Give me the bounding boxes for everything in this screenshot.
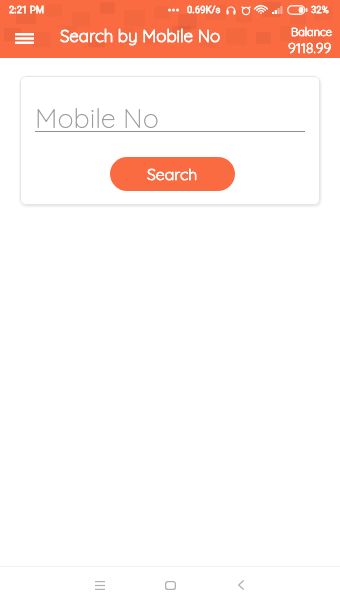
staticText: Search (147, 164, 198, 184)
staticText: Search (147, 164, 198, 184)
button[interactable]: Back (221, 566, 261, 604)
staticText: 9118.99 (288, 39, 332, 57)
button[interactable]: Home (150, 566, 190, 604)
staticText: Search by Mobile No (60, 25, 221, 46)
button[interactable]: Recent apps (80, 566, 120, 604)
staticText: 2:21 PM (9, 4, 44, 15)
button[interactable]: Search (110, 157, 235, 191)
staticText: Balance (291, 25, 332, 39)
button[interactable]: Open navigation menu (8, 22, 40, 54)
staticText: 32% (311, 4, 329, 15)
staticText: 0.69K/s (187, 4, 221, 15)
staticText: Balance (291, 25, 332, 39)
staticText: 9118.99 (288, 39, 332, 57)
staticText: Search by Mobile No (60, 25, 221, 46)
staticText: Mobile No (35, 101, 159, 135)
